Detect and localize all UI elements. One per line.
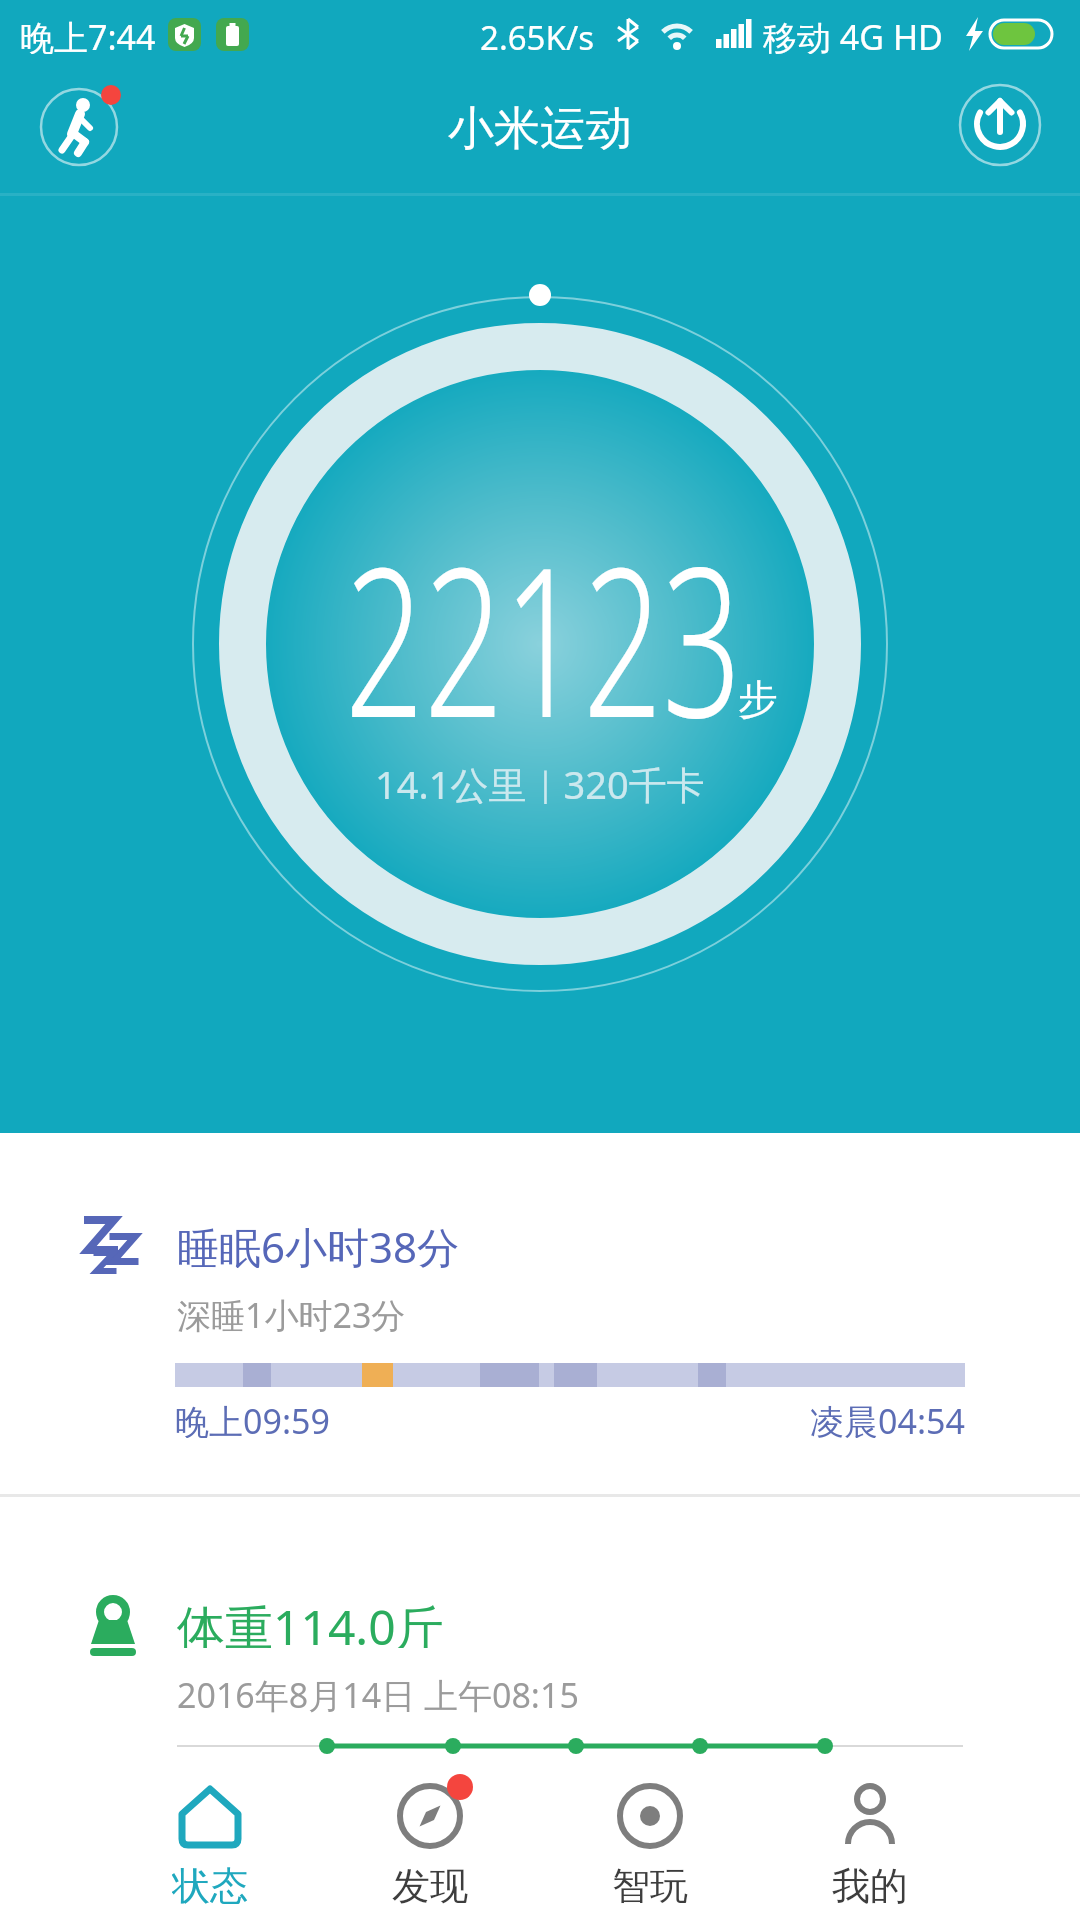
button[interactable]	[0, 1497, 1080, 1767]
staticText: 状态	[172, 1862, 248, 1906]
staticText: 发现	[392, 1862, 468, 1906]
staticText: 步	[738, 674, 778, 724]
staticText: 深睡1小时23分	[177, 1292, 406, 1336]
button[interactable]	[760, 1767, 980, 1920]
staticText: 凌晨04:54	[810, 1398, 965, 1438]
button[interactable]	[540, 1767, 760, 1920]
button[interactable]	[0, 1133, 1080, 1494]
button[interactable]	[37, 85, 121, 169]
button[interactable]	[150, 250, 930, 1030]
staticText: 我的	[832, 1862, 908, 1906]
staticText: 智玩	[612, 1862, 688, 1906]
staticText: 体重114.0斤	[177, 1594, 444, 1648]
button[interactable]	[956, 81, 1044, 169]
staticText: 晚上09:59	[175, 1398, 330, 1438]
button[interactable]	[320, 1767, 540, 1920]
staticText: 小米运动	[448, 100, 632, 156]
button[interactable]	[100, 1767, 320, 1920]
staticText: 2016年8月14日 上午08:15	[177, 1672, 579, 1716]
staticText: 22123	[345, 497, 742, 777]
staticText: 移动 4G HD	[763, 14, 943, 54]
staticText: 2.65K/s	[480, 15, 594, 55]
staticText: 晚上7:44	[20, 14, 156, 54]
staticText: 14.1公里｜320千卡	[375, 758, 705, 804]
staticText: 睡眠6小时38分	[177, 1218, 460, 1268]
